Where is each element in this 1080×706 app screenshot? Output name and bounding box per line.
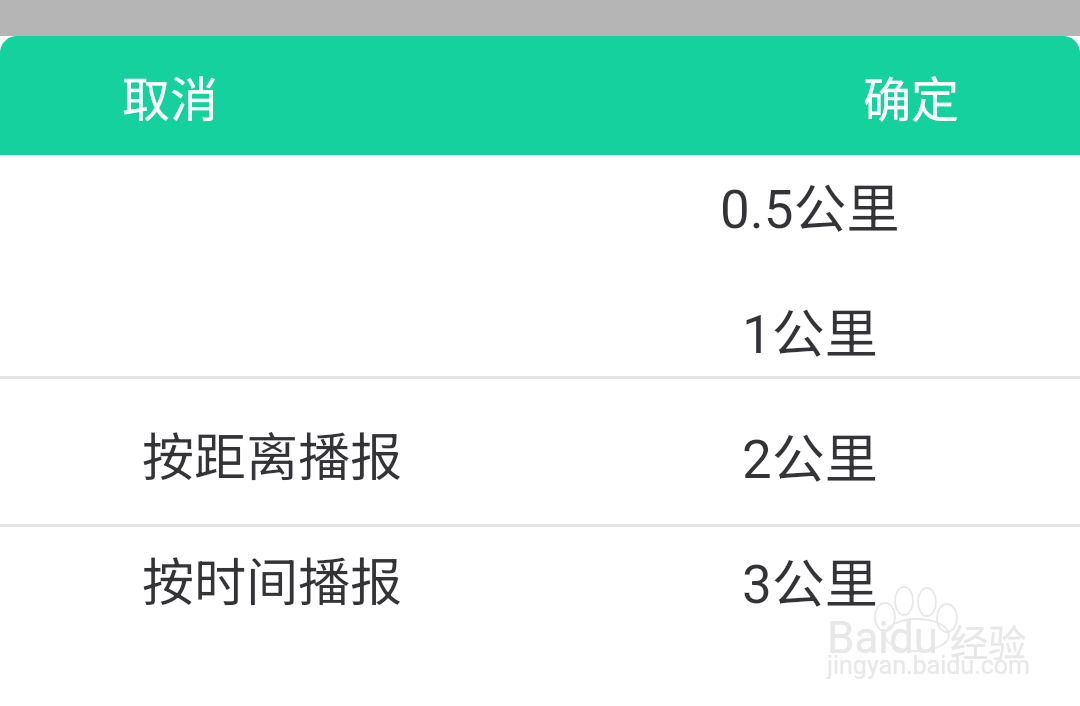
staticText: 0.5公里 <box>720 167 900 244</box>
staticText: 按距离播报 <box>142 416 403 491</box>
button[interactable]: 按距离播报 <box>0 391 1080 516</box>
other: Baidu Jingyan watermark <box>823 585 1029 680</box>
staticText: 1公里 <box>742 292 878 369</box>
staticText: 取消 <box>122 61 219 131</box>
staticText: jingyan.baidu.com <box>827 651 1031 680</box>
button[interactable]: 确定 <box>837 39 1080 153</box>
button[interactable]: 2公里 <box>0 393 1080 518</box>
staticText: 确定 <box>863 61 960 131</box>
button[interactable]: 0.5公里 <box>0 143 1080 268</box>
staticText: 3公里 <box>742 542 878 619</box>
button[interactable]: 取消 <box>0 39 245 153</box>
button[interactable]: 按时间播报 <box>0 516 1080 641</box>
staticText: 2公里 <box>742 417 878 494</box>
button[interactable]: 3公里 <box>0 518 1080 643</box>
staticText: 经验 <box>950 613 1027 668</box>
staticText: 按时间播报 <box>142 541 403 616</box>
button[interactable]: 1公里 <box>0 268 1080 393</box>
staticText: Baidu <box>827 612 939 664</box>
